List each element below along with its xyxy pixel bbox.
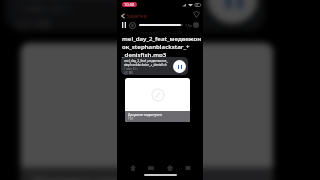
staticText: 1,5x — [185, 23, 192, 28]
staticText: _denisfish.mp3 — [122, 50, 167, 58]
staticText: 4,5 МБ — [16, 16, 51, 31]
button[interactable]: Заметки — [121, 12, 148, 19]
button[interactable]: Pause audio — [173, 60, 186, 73]
staticText: 10:08 — [124, 2, 135, 7]
staticText: 4,5 МБ — [124, 71, 133, 75]
button[interactable]: Profile — [182, 163, 193, 173]
button[interactable]: Документ недоступен — [20, 43, 273, 180]
staticText: 1 мин 52 с — [124, 67, 138, 71]
staticText: Документ недоступен — [128, 113, 162, 117]
staticText: PDF — [128, 117, 134, 121]
button[interactable]: Shield — [192, 10, 201, 19]
button[interactable]: Apps — [164, 163, 175, 173]
button[interactable]: mel_day_2_feat_медвежонок_stephanblackst… — [5, 0, 265, 31]
staticText: mel_day_2_feat_медвежон — [122, 34, 202, 42]
staticText: Документ недоступен — [32, 175, 164, 180]
staticText: Заметки — [126, 12, 148, 19]
button[interactable]: Gallery — [145, 163, 156, 173]
staticText: 2 октября 2021 г. в 22:48 — [137, 30, 183, 35]
button[interactable]: mel_day_2_feat_медвежонок_stephanblackst… — [121, 57, 188, 75]
staticText: ок_stephanblackstar_+ — [122, 42, 190, 50]
staticText: mel_day_2_feat_медвежонок_stephanblackst… — [124, 59, 169, 66]
button[interactable]: Pause audio — [207, 0, 258, 24]
button[interactable]: Документ недоступен — [125, 78, 190, 122]
button[interactable]: Home — [127, 163, 138, 173]
button[interactable]: Pause — [122, 22, 126, 28]
